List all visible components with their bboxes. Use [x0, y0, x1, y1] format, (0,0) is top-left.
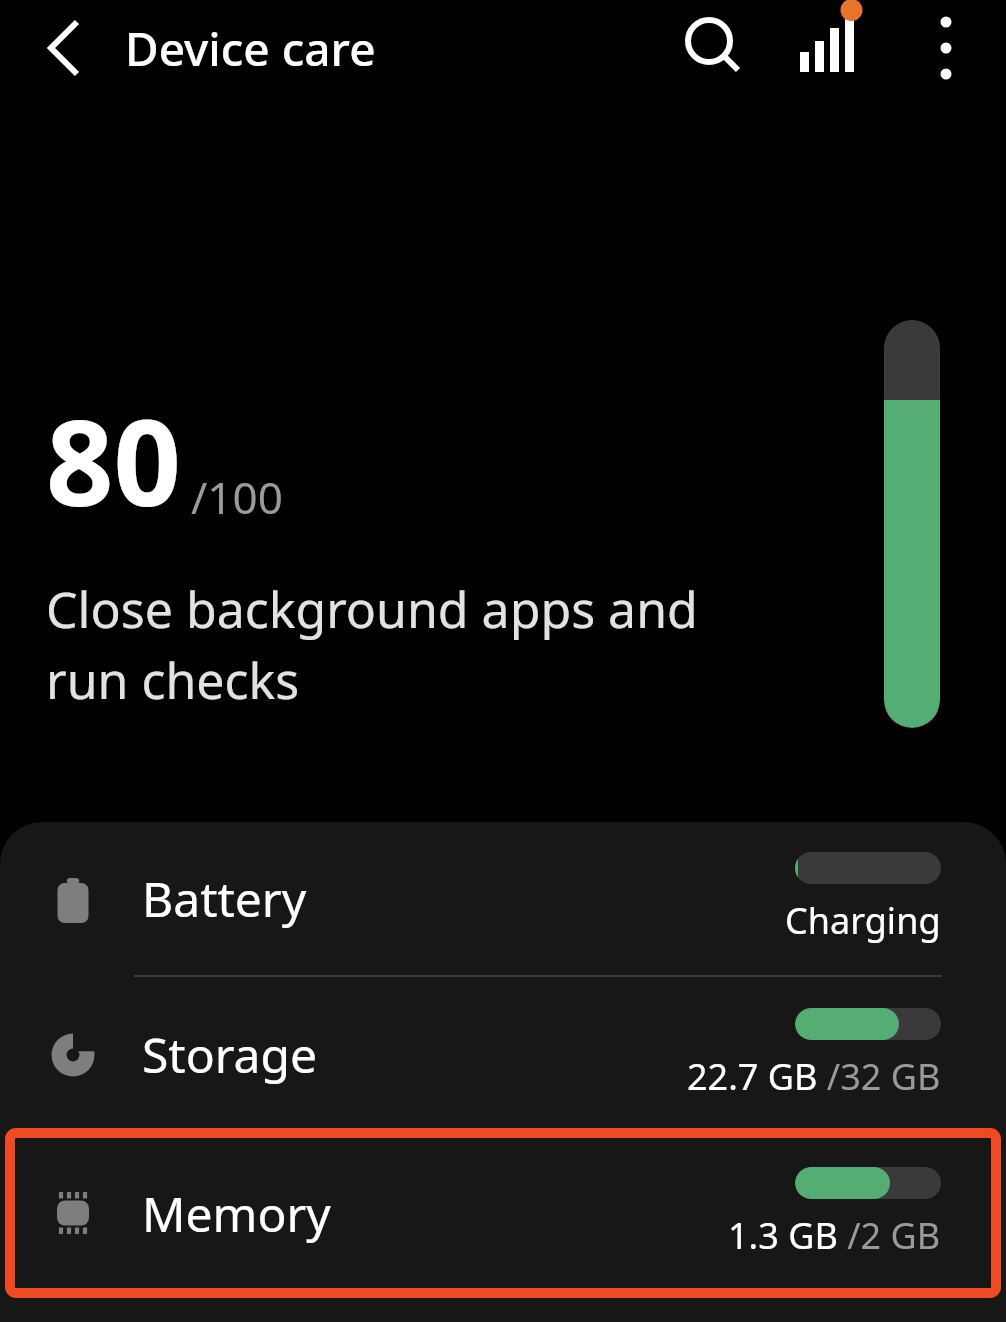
button[interactable]: Search: [666, 2, 758, 94]
staticText: 1.3 GB /2 GB: [728, 1211, 941, 1260]
button[interactable]: Battery: [0, 822, 1006, 975]
button[interactable]: Memory: [0, 1132, 1006, 1294]
staticText: Device care: [125, 17, 376, 80]
staticText: Close background apps and run checks: [46, 575, 698, 714]
staticText: Charging: [785, 896, 941, 945]
staticText: /100: [191, 467, 283, 527]
staticText: Battery: [142, 866, 307, 931]
button[interactable]: More options: [900, 2, 992, 94]
button[interactable]: Storage: [0, 977, 1006, 1132]
staticText: 22.7 GB /32 GB: [687, 1052, 941, 1101]
staticText: Storage: [142, 1022, 318, 1087]
staticText: 80: [46, 380, 181, 541]
button[interactable]: Back: [20, 3, 110, 93]
staticText: Memory: [142, 1181, 331, 1246]
other: Memory highlighted: [10, 1133, 996, 1293]
button[interactable]: Diagnostics: [784, 2, 876, 94]
